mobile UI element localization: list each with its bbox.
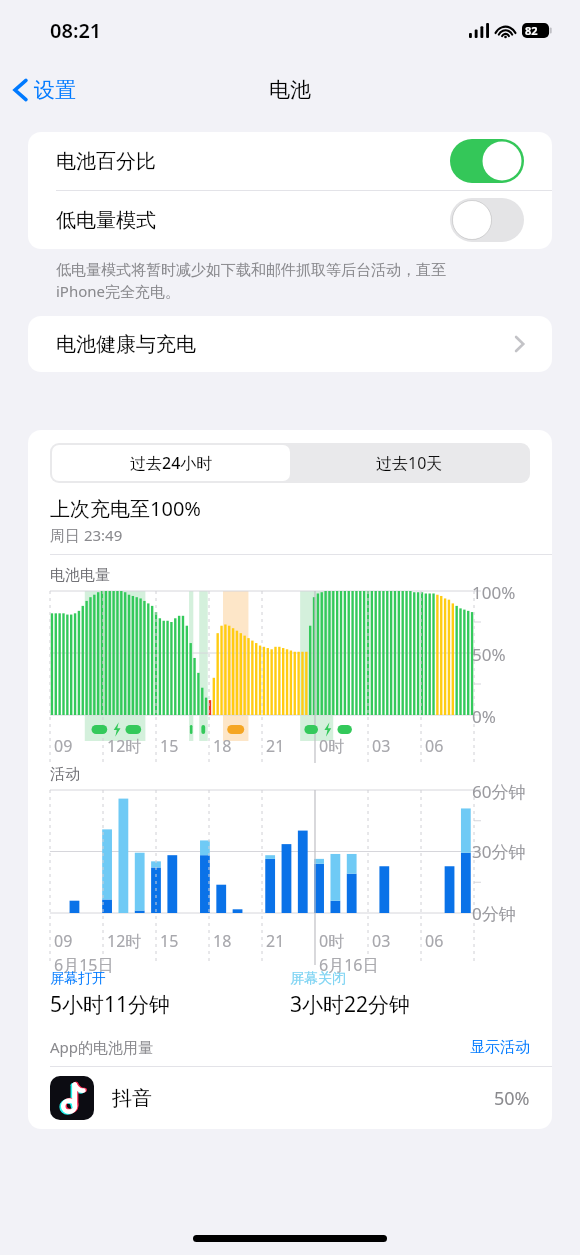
staticText: 屏幕关闭 xyxy=(290,970,346,988)
staticText: 09 xyxy=(54,930,73,952)
staticText: 6月16日 xyxy=(319,954,379,976)
button[interactable]: 抖音 xyxy=(28,1067,552,1129)
staticText: 100% xyxy=(472,581,526,604)
button[interactable]: 电池健康与充电 xyxy=(28,316,552,372)
staticText: 15 xyxy=(160,735,179,757)
staticText: 60分钟 xyxy=(472,780,526,803)
staticText: 09 xyxy=(54,735,73,757)
staticText: 18 xyxy=(213,930,232,952)
staticText: 06 xyxy=(425,930,444,952)
staticText: 50% xyxy=(472,643,526,666)
staticText: 21 xyxy=(266,930,285,952)
staticText: 82 xyxy=(525,23,538,38)
staticText: 0分钟 xyxy=(472,902,526,925)
staticText: 屏幕打开 xyxy=(50,970,106,988)
staticText: 抖音 xyxy=(112,1086,152,1111)
button[interactable]: 过去24小时 xyxy=(52,445,290,481)
staticText: 12时 xyxy=(107,735,142,757)
staticText: 设置 xyxy=(34,77,76,103)
staticText: 电池百分比 xyxy=(56,149,156,174)
button[interactable]: 过去10天 xyxy=(290,445,528,481)
staticText: 活动 xyxy=(50,765,80,784)
staticText: 0时 xyxy=(319,930,345,952)
staticText: 0时 xyxy=(319,735,345,757)
staticText: 电池 xyxy=(269,77,311,103)
staticText: 周日 23:49 xyxy=(50,525,123,545)
staticText: 15 xyxy=(160,930,179,952)
button[interactable]: 显示活动 xyxy=(470,1038,530,1057)
staticText: 低电量模式 xyxy=(56,208,156,233)
staticText: 50% xyxy=(494,1086,530,1111)
button[interactable]: 低电量模式 xyxy=(28,191,552,249)
button[interactable]: 设置 xyxy=(0,71,88,109)
staticText: 3小时22分钟 xyxy=(290,990,411,1019)
staticText: 03 xyxy=(372,735,391,757)
staticText: 5小时11分钟 xyxy=(50,990,171,1019)
staticText: 电池健康与充电 xyxy=(56,332,196,357)
staticText: App的电池用量 xyxy=(50,1037,154,1057)
staticText: 08:21 xyxy=(50,17,102,44)
staticText: 显示活动 xyxy=(470,1038,530,1057)
staticText: 过去24小时 xyxy=(130,452,213,474)
staticText: 电池电量 xyxy=(50,566,110,585)
staticText: 18 xyxy=(213,735,232,757)
staticText: 0% xyxy=(472,705,526,728)
staticText: 上次充电至100% xyxy=(50,495,201,522)
button[interactable]: 电池百分比 xyxy=(28,132,552,190)
staticText: 6月15日 xyxy=(54,954,114,976)
staticText: 06 xyxy=(425,735,444,757)
staticText: 21 xyxy=(266,735,285,757)
staticText: 低电量模式将暂时减少如下载和邮件抓取等后台活动，直至 iPhone完全充电。 xyxy=(56,261,446,302)
staticText: 12时 xyxy=(107,930,142,952)
staticText: 过去10天 xyxy=(376,452,443,474)
staticText: 30分钟 xyxy=(472,840,526,863)
staticText: 03 xyxy=(372,930,391,952)
